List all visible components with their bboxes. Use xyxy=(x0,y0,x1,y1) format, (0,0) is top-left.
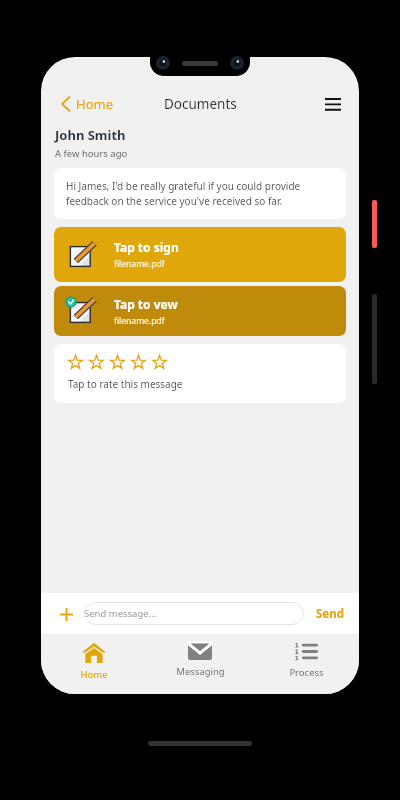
staticText: Home xyxy=(76,95,113,113)
button[interactable]: Tap to rate this message xyxy=(54,344,346,403)
button[interactable]: Home xyxy=(41,634,147,694)
button[interactable]: Process xyxy=(253,634,359,694)
button[interactable]: Tap to sign xyxy=(54,227,346,282)
button[interactable]: Tap to vew xyxy=(54,286,346,336)
staticText: filename.pdf xyxy=(114,315,165,327)
staticText: A few hours ago xyxy=(55,147,128,160)
staticText: Messaging xyxy=(176,665,225,678)
staticText: Send message... xyxy=(84,607,304,620)
staticText: Home xyxy=(80,668,108,681)
staticText: Tap to rate this message xyxy=(68,377,183,391)
staticText: Documents xyxy=(164,95,237,113)
staticText: filename.pdf xyxy=(114,258,165,270)
button[interactable]: Add attachment xyxy=(54,602,78,626)
button[interactable]: Send xyxy=(314,602,346,626)
button[interactable]: Menu xyxy=(321,94,345,115)
staticText: John Smith xyxy=(55,126,126,144)
staticText: Send xyxy=(316,606,344,622)
staticText: Tap to vew xyxy=(114,296,178,312)
button[interactable]: Home xyxy=(57,91,117,117)
button[interactable]: Hi James, I'd be really grateful if you … xyxy=(54,168,346,219)
staticText: Process xyxy=(289,666,324,679)
button[interactable]: Messaging xyxy=(147,634,253,694)
staticText: Hi James, I'd be really grateful if you … xyxy=(66,179,334,208)
staticText: Tap to sign xyxy=(114,239,179,255)
button[interactable]: Send message... xyxy=(84,602,304,625)
